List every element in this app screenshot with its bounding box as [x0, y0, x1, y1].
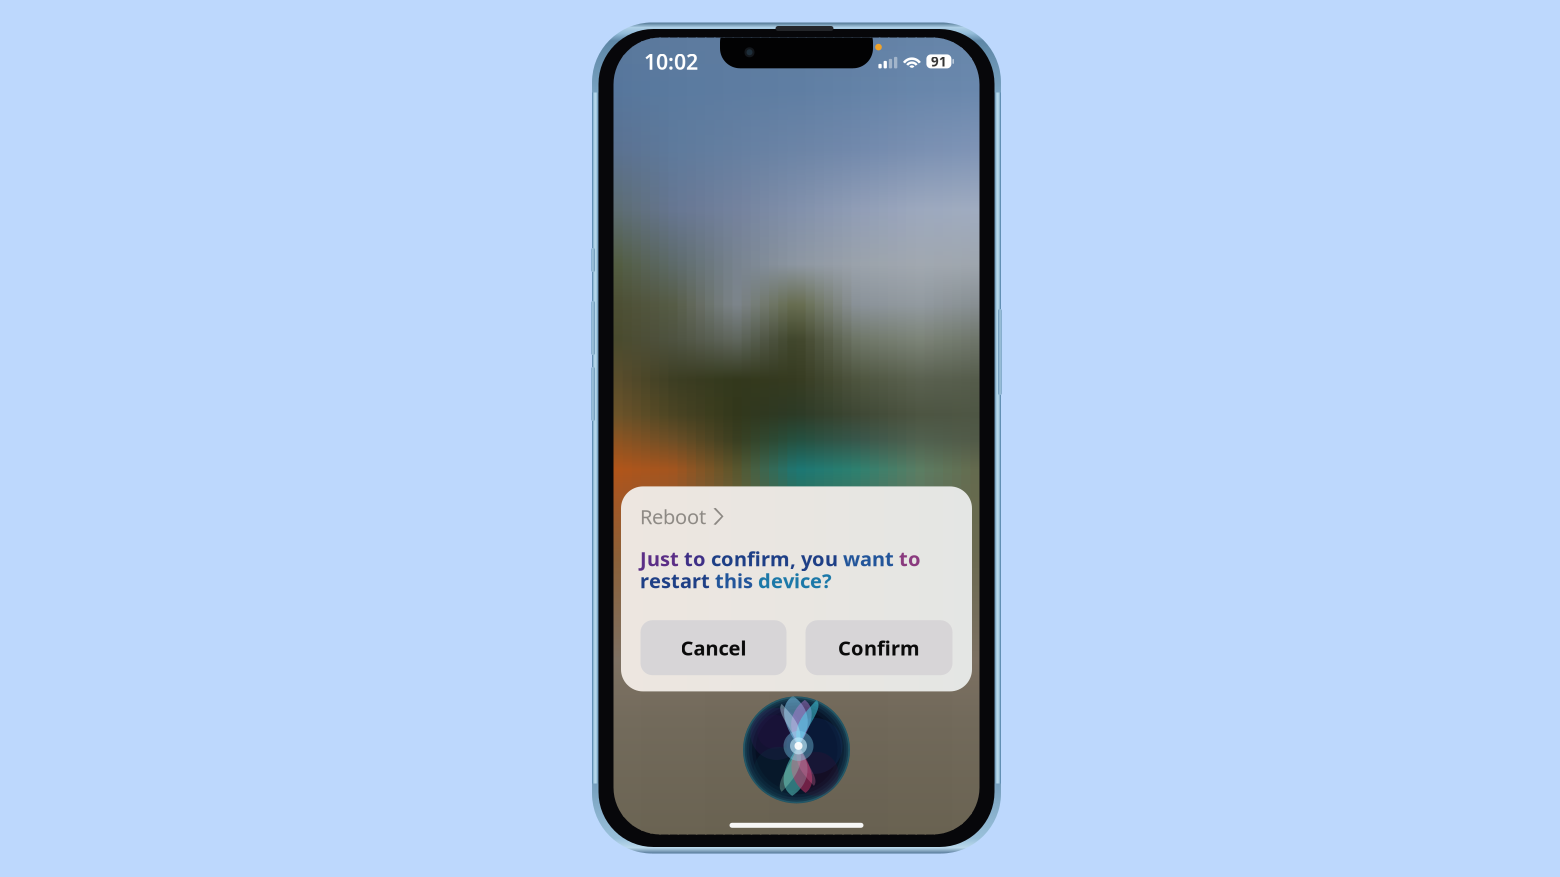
staticText: Reboot	[640, 503, 706, 530]
staticText: 91	[931, 52, 947, 70]
staticText: you	[801, 545, 843, 572]
staticText: device?	[758, 567, 832, 594]
staticText: to	[899, 545, 921, 572]
button[interactable]: Reboot	[640, 504, 953, 528]
staticText: 10:02	[644, 47, 698, 75]
button[interactable]: Cancel	[640, 620, 786, 675]
staticText: to	[684, 545, 711, 572]
staticText: want	[843, 545, 899, 572]
staticText: Cancel	[680, 634, 746, 661]
staticText: this	[715, 567, 758, 594]
staticText: confirm,	[711, 545, 801, 572]
button[interactable]: Confirm	[805, 620, 952, 675]
staticText: Just	[640, 545, 684, 572]
staticText: Confirm	[838, 634, 920, 661]
staticText: restart	[640, 567, 715, 594]
